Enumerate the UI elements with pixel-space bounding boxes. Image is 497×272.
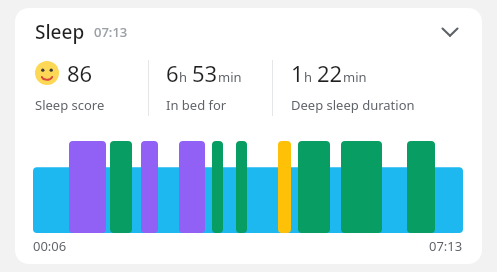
button[interactable]: Collapse <box>428 10 472 54</box>
staticText: 86 <box>67 58 93 88</box>
staticText: h <box>179 68 188 86</box>
button[interactable]: 1 <box>273 56 482 128</box>
staticText: min <box>218 68 242 86</box>
staticText: 07:13 <box>94 23 128 41</box>
staticText: 1 <box>291 58 304 88</box>
staticText: 6 <box>166 58 179 88</box>
staticText: 00:06 <box>33 237 67 255</box>
button[interactable]: 6 <box>149 56 272 128</box>
button[interactable] <box>33 141 463 233</box>
staticText: Deep sleep duration <box>291 96 415 114</box>
staticText: Sleep <box>35 19 85 45</box>
staticText: 22 <box>317 58 343 88</box>
staticText: h <box>304 68 313 86</box>
staticText: min <box>343 68 367 86</box>
staticText: 07:13 <box>429 237 463 255</box>
staticText: Sleep score <box>35 96 105 114</box>
button[interactable]: 86 <box>15 56 148 128</box>
button[interactable]: Sleep <box>15 8 482 56</box>
staticText: In bed for <box>166 96 227 114</box>
staticText: 53 <box>192 58 218 88</box>
